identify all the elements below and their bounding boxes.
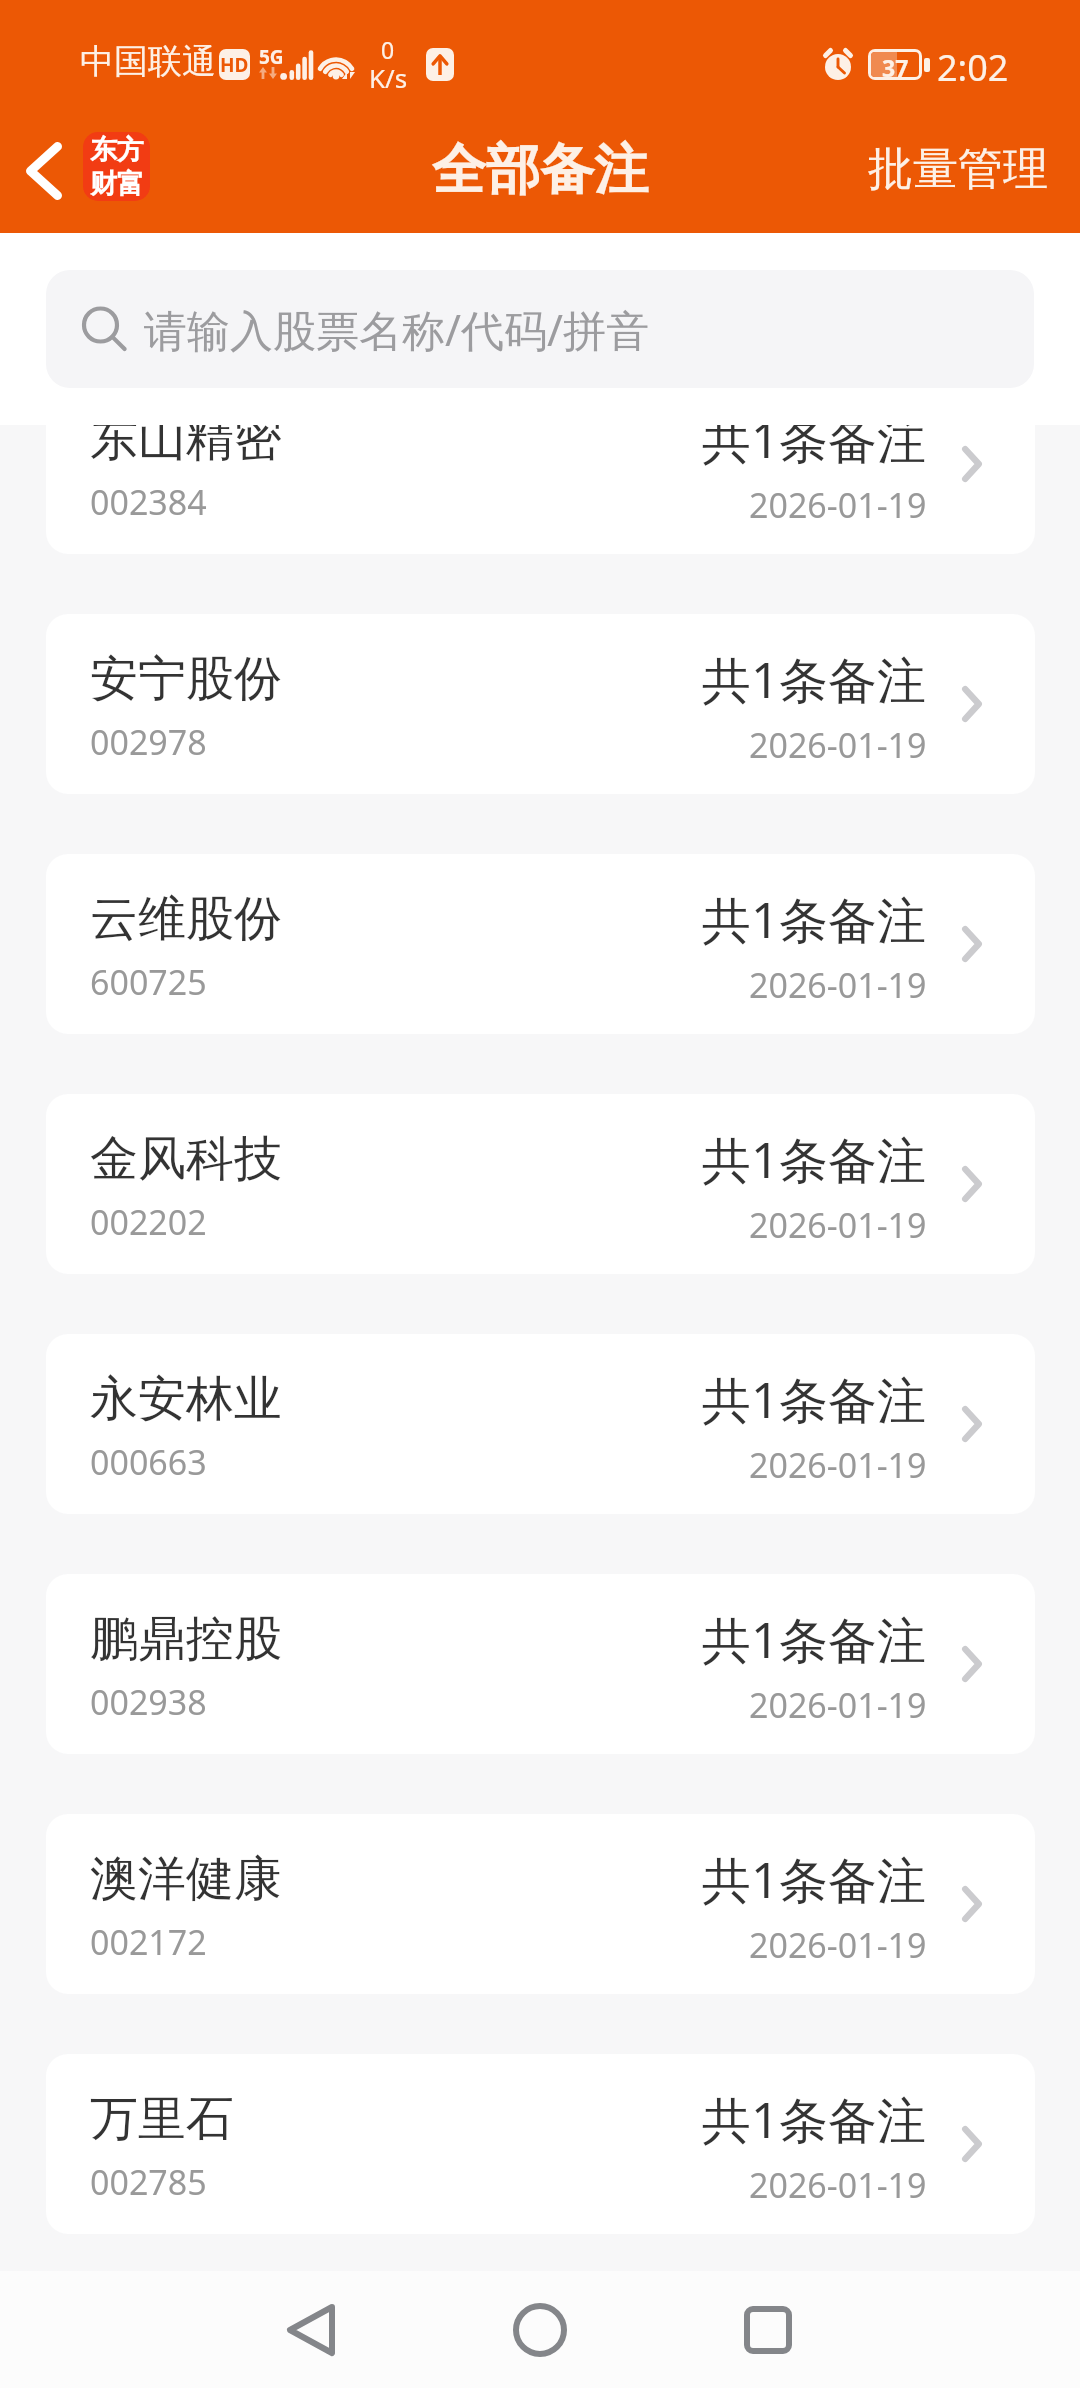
staticText: K/s <box>369 60 408 95</box>
staticText: 2026-01-19 <box>749 722 927 768</box>
staticText: 2026-01-19 <box>749 2162 927 2208</box>
staticText: 002978 <box>90 719 207 765</box>
button[interactable]: 请输入股票名称/代码/拼音 <box>46 270 1034 388</box>
staticText: 2026-01-19 <box>749 1922 927 1968</box>
staticText: 002785 <box>90 2159 207 2205</box>
staticText: 东方 <box>90 133 144 167</box>
staticText: 共1条备注 <box>702 886 927 953</box>
staticText: 财富 <box>90 167 144 201</box>
button[interactable]: 万里石 <box>46 2054 1035 2234</box>
staticText: 5G <box>259 44 284 70</box>
staticText: 2026-01-19 <box>749 1682 927 1728</box>
staticText: 000663 <box>90 1439 207 1485</box>
staticText: 永安林业 <box>90 1369 282 1429</box>
staticText: 2:02 <box>937 43 1009 92</box>
staticText: 共1条备注 <box>702 2086 927 2153</box>
button[interactable]: 鹏鼎控股 <box>46 1574 1035 1754</box>
button[interactable]: 批量管理 <box>836 117 1080 222</box>
button[interactable]: 安宁股份 <box>46 614 1035 794</box>
staticText: 002202 <box>90 1199 207 1245</box>
staticText: 2026-01-19 <box>749 962 927 1008</box>
staticText: 请输入股票名称/代码/拼音 <box>144 300 649 359</box>
button[interactable]: 东山精密 <box>46 425 1035 554</box>
staticText: 安宁股份 <box>90 649 282 709</box>
staticText: 002938 <box>90 1679 207 1725</box>
staticText: 全部备注 <box>432 136 648 204</box>
staticText: 中国联通 <box>80 40 216 83</box>
button[interactable]: Eastmoney <box>83 132 150 201</box>
staticText: 云维股份 <box>90 889 282 949</box>
button[interactable]: Back <box>2 120 86 222</box>
staticText: 澳洋健康 <box>90 1849 282 1909</box>
staticText: 2026-01-19 <box>749 1202 927 1248</box>
staticText: 共1条备注 <box>702 1366 927 1433</box>
staticText: 37 <box>882 52 909 77</box>
staticText: 金风科技 <box>90 1129 282 1189</box>
staticText: 共1条备注 <box>702 1846 927 1913</box>
button[interactable]: 澳洋健康 <box>46 1814 1035 1994</box>
staticText: 批量管理 <box>868 141 1048 198</box>
staticText: HD <box>220 52 249 78</box>
staticText: 002384 <box>90 479 207 525</box>
button[interactable]: 金风科技 <box>46 1094 1035 1274</box>
button[interactable]: 永安林业 <box>46 1334 1035 1514</box>
staticText: 共1条备注 <box>702 1606 927 1673</box>
staticText: 共1条备注 <box>702 1126 927 1193</box>
staticText: 002172 <box>90 1919 207 1965</box>
button[interactable]: 云维股份 <box>46 854 1035 1034</box>
staticText: 2026-01-19 <box>749 482 927 528</box>
staticText: 共1条备注 <box>702 646 927 713</box>
button[interactable]: Home <box>480 2271 600 2388</box>
staticText: 600725 <box>90 959 207 1005</box>
button[interactable]: Back <box>251 2271 371 2388</box>
staticText: 鹏鼎控股 <box>90 1609 282 1669</box>
staticText: 2026-01-19 <box>749 1442 927 1488</box>
button[interactable]: Recent apps <box>708 2271 828 2388</box>
staticText: 东山精密 <box>90 425 282 469</box>
staticText: 万里石 <box>90 2089 234 2149</box>
staticText: 0 <box>381 34 395 65</box>
staticText: 共1条备注 <box>702 425 927 473</box>
